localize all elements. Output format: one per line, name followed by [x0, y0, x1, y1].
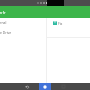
button[interactable]: Back [21, 83, 33, 90]
staticText: rnal [0, 20, 7, 25]
button[interactable]: Home [39, 83, 51, 90]
staticText: e Drive [0, 30, 12, 35]
button[interactable]: rnal [0, 18, 46, 27]
button[interactable]: e Drive [0, 28, 46, 37]
staticText: Fix [58, 21, 63, 25]
button[interactable]: Fix [47, 18, 90, 28]
staticText: n fr [0, 11, 6, 15]
